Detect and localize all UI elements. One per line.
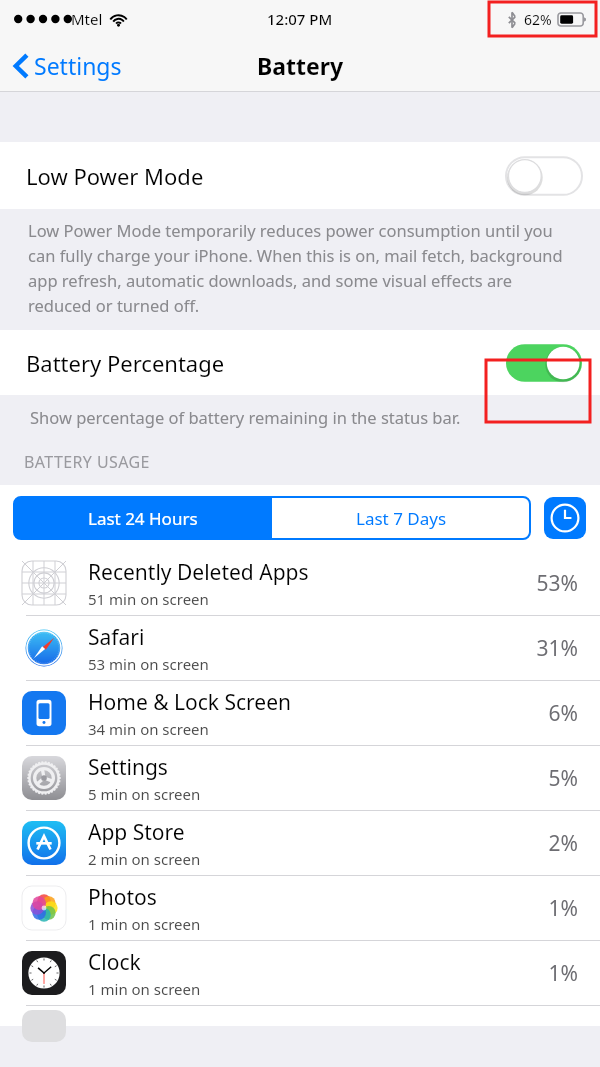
button[interactable]: Last 7 Days	[272, 497, 530, 539]
staticText: Photos	[88, 883, 157, 912]
button[interactable]: Toggle off	[506, 153, 582, 199]
button[interactable]: Toggle on	[506, 340, 582, 386]
staticText: 1%	[548, 894, 578, 923]
button[interactable]: Recently Deleted Apps	[0, 551, 600, 615]
button[interactable]: Last 24 Hours	[14, 497, 272, 539]
button[interactable]: Show usage by time	[544, 497, 586, 539]
button[interactable]: Battery Percentage	[0, 330, 600, 395]
button[interactable]: Photos	[0, 876, 600, 940]
button[interactable]: Settings	[10, 44, 126, 87]
staticText: Home & Lock Screen	[88, 688, 292, 717]
staticText: 2 min on screen	[88, 849, 201, 869]
button[interactable]: Settings	[0, 746, 600, 810]
staticText: Last 7 Days	[356, 507, 447, 530]
staticText: 1 min on screen	[88, 979, 201, 999]
staticText: Settings	[34, 50, 122, 81]
staticText: 34 min on screen	[88, 719, 209, 739]
staticText: 51 min on screen	[88, 589, 209, 609]
staticText: Battery	[257, 50, 344, 81]
staticText: 1%	[548, 959, 578, 988]
staticText: Low Power Mode temporarily reduces power…	[28, 219, 576, 316]
staticText: BATTERY USAGE	[24, 451, 150, 473]
staticText: 6%	[548, 699, 578, 728]
button[interactable]: App Store	[0, 811, 600, 875]
staticText: Show percentage of battery remaining in …	[30, 406, 461, 428]
staticText: 62%	[524, 10, 552, 29]
staticText: Safari	[88, 623, 145, 652]
button[interactable]: Home & Lock Screen	[0, 681, 600, 745]
staticText: Mtel	[71, 9, 103, 29]
staticText: 31%	[536, 634, 578, 663]
staticText: 5%	[548, 764, 578, 793]
staticText: 5 min on screen	[88, 784, 201, 804]
button[interactable]: Safari	[0, 616, 600, 680]
staticText: App Store	[88, 818, 185, 847]
staticText: 2%	[548, 829, 578, 858]
staticText: Clock	[88, 948, 141, 977]
staticText: 1 min on screen	[88, 914, 201, 934]
button[interactable]: Low Power Mode	[0, 142, 600, 209]
button[interactable]	[0, 1006, 600, 1026]
staticText: Battery Percentage	[26, 348, 225, 378]
staticText: 53 min on screen	[88, 654, 209, 674]
staticText: Last 24 Hours	[88, 507, 198, 530]
staticText: 53%	[536, 569, 578, 598]
staticText: Settings	[88, 753, 168, 782]
button[interactable]: Clock	[0, 941, 600, 1005]
staticText: Recently Deleted Apps	[88, 558, 309, 587]
staticText: 12:07 PM	[267, 9, 333, 29]
staticText: Low Power Mode	[26, 161, 204, 191]
